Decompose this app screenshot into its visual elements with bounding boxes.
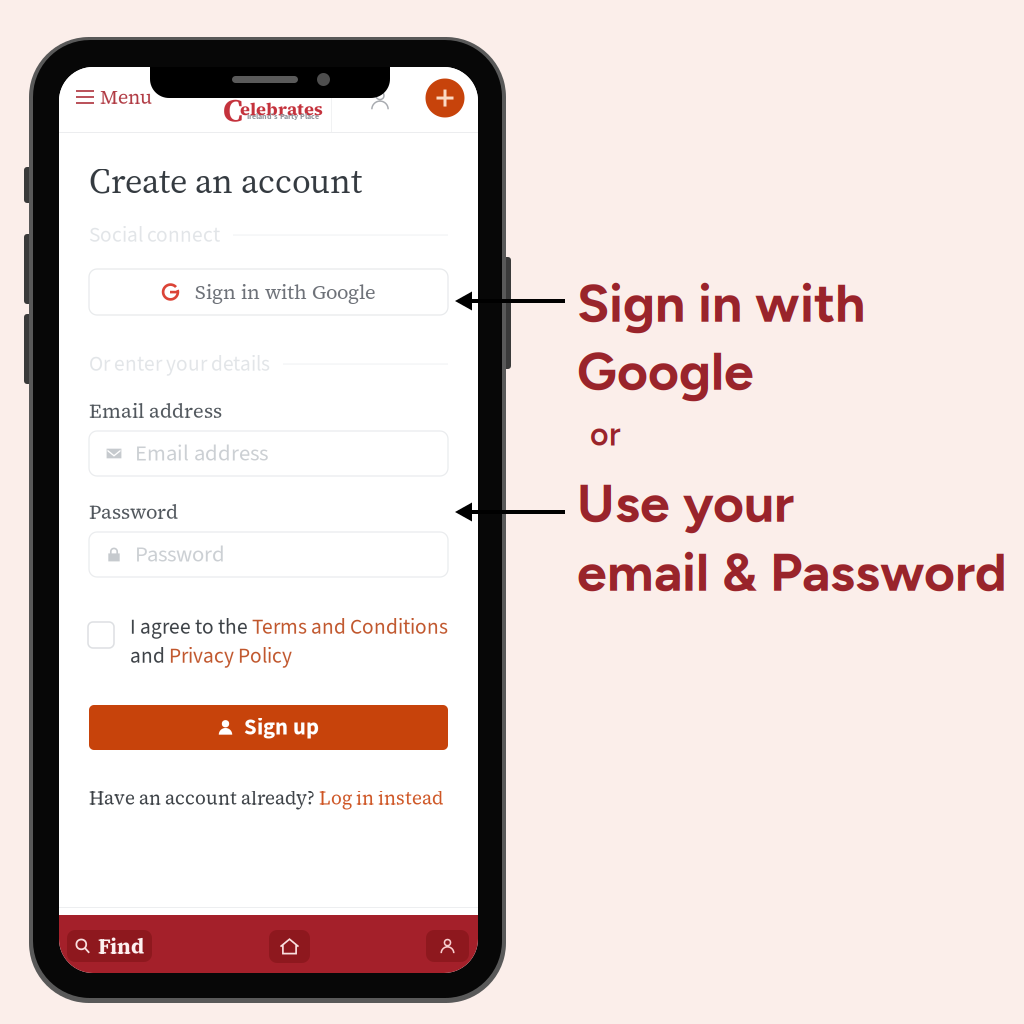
staticText: Find bbox=[98, 931, 144, 961]
staticText: Email address bbox=[89, 397, 222, 424]
staticText: Create an account bbox=[89, 157, 362, 204]
button[interactable]: Menu bbox=[59, 77, 164, 117]
staticText: Sign in with Google bbox=[195, 278, 376, 306]
staticText: Sign in with bbox=[577, 271, 865, 335]
staticText: Password bbox=[135, 538, 225, 571]
staticText: elebrates bbox=[240, 97, 323, 121]
button[interactable]: Sign up bbox=[89, 705, 448, 750]
staticText: Email address bbox=[135, 437, 268, 470]
staticText: or bbox=[590, 415, 621, 453]
button[interactable]: Profile bbox=[426, 930, 469, 962]
staticText: Ireland's Party Place bbox=[247, 111, 319, 122]
staticText: Use your bbox=[577, 471, 794, 535]
staticText: Google bbox=[577, 339, 754, 403]
staticText: C bbox=[223, 88, 243, 132]
staticText: Password bbox=[89, 498, 178, 525]
button[interactable]: Find bbox=[67, 930, 152, 962]
staticText: Privacy Policy bbox=[169, 641, 292, 671]
button[interactable]: Sign in with Google bbox=[89, 269, 448, 315]
staticText: Menu bbox=[100, 84, 152, 110]
staticText: Social connect bbox=[89, 220, 220, 250]
staticText: Or enter your details bbox=[89, 349, 270, 379]
staticText: email & Password bbox=[577, 540, 1007, 604]
button[interactable]: I agree to the bbox=[88, 612, 450, 672]
staticText: Sign up bbox=[244, 711, 319, 744]
staticText: Have an account already? bbox=[89, 785, 319, 811]
button[interactable]: Log in instead bbox=[319, 785, 443, 811]
staticText: I agree to the bbox=[130, 612, 252, 642]
staticText: Log in instead bbox=[319, 785, 443, 811]
staticText: and bbox=[130, 641, 169, 671]
staticText: Terms and Conditions bbox=[252, 612, 448, 642]
button[interactable]: Home bbox=[269, 930, 310, 963]
button[interactable]: Account bbox=[354, 75, 406, 125]
button[interactable]: Add bbox=[417, 70, 473, 126]
